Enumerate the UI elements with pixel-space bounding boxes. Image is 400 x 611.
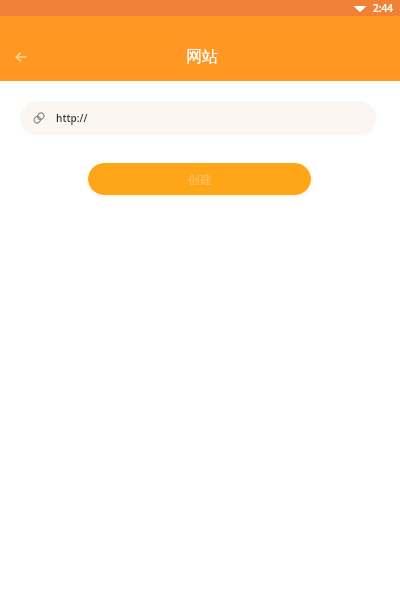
button[interactable]: Back xyxy=(2,38,40,76)
button[interactable]: http:// xyxy=(20,101,376,135)
staticText: http:// xyxy=(56,111,88,125)
staticText: 创建 xyxy=(188,172,212,187)
button[interactable]: 创建 xyxy=(88,163,311,195)
staticText: 网站 xyxy=(186,47,218,67)
staticText: 2:44 xyxy=(373,1,393,15)
